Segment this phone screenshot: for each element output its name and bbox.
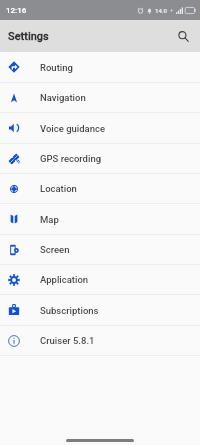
button[interactable]: Location	[0, 174, 200, 203]
other: Home	[66, 439, 134, 442]
staticText: GPS recording	[40, 153, 102, 164]
staticText: Navigation	[40, 92, 86, 103]
button[interactable]: Application	[0, 265, 200, 294]
button[interactable]: GPS recording	[0, 144, 200, 173]
button[interactable]: Cruiser 5.8.1	[0, 326, 200, 355]
staticText: Screen	[40, 244, 70, 255]
staticText: Settings	[8, 30, 49, 43]
staticText: Location	[40, 183, 77, 194]
staticText: Map	[40, 214, 59, 225]
button[interactable]: Subscriptions	[0, 295, 200, 325]
button[interactable]: Screen	[0, 235, 200, 264]
staticText: Voice guidance	[40, 123, 106, 134]
button[interactable]: Navigation	[0, 83, 200, 112]
button[interactable]: Voice guidance	[0, 113, 200, 143]
staticText: Cruiser 5.8.1	[40, 335, 95, 346]
staticText: 12:16	[6, 6, 27, 15]
staticText: Application	[40, 274, 89, 285]
button[interactable]: Routing	[0, 52, 200, 82]
button[interactable]: Map	[0, 204, 200, 234]
staticText: Subscriptions	[40, 305, 99, 316]
staticText: 14.0	[155, 7, 167, 14]
button[interactable]: Search	[171, 24, 195, 48]
staticText: Routing	[40, 62, 73, 73]
